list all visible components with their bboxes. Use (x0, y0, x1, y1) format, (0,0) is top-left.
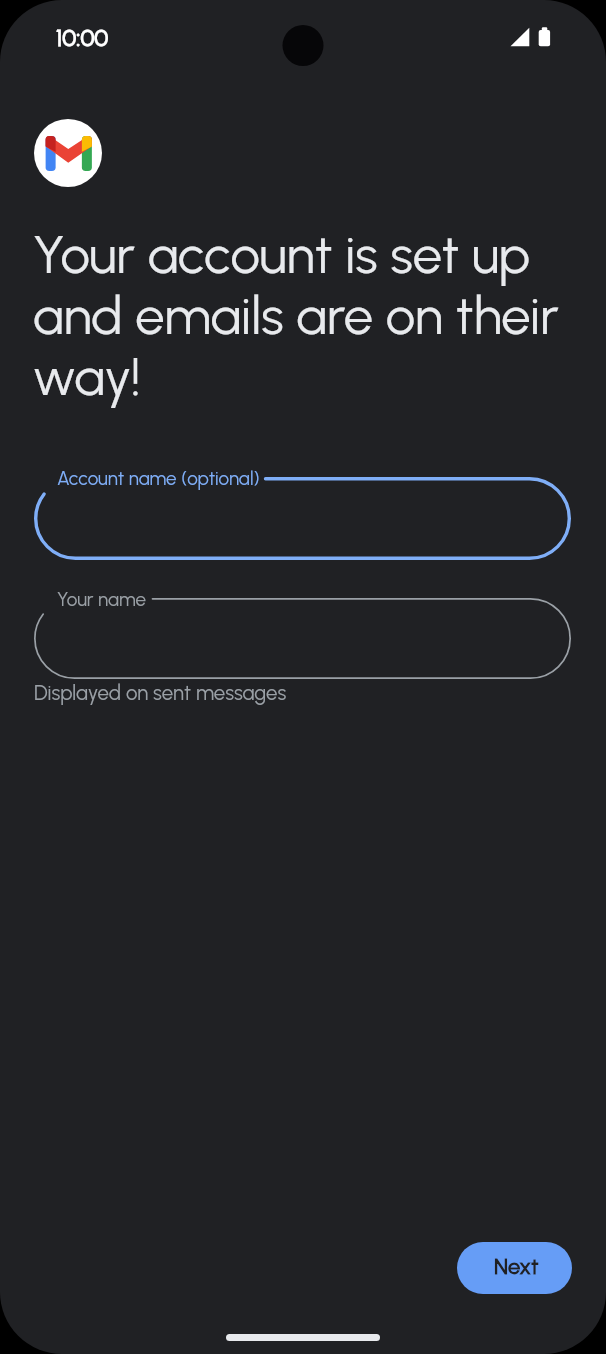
staticText: Displayed on sent messages (34, 681, 287, 705)
staticText: Your account is set up and emails are on… (33, 223, 578, 408)
other: Gmail (34, 119, 102, 187)
staticText: Your name (57, 588, 146, 611)
staticText: Next (494, 1253, 539, 1279)
staticText: 10:00 (56, 24, 109, 52)
staticText: Account name (optional) (57, 467, 260, 490)
button[interactable]: Account name (optional) (34, 477, 571, 560)
button[interactable]: Your name (34, 598, 571, 679)
button[interactable]: Next (457, 1242, 572, 1294)
